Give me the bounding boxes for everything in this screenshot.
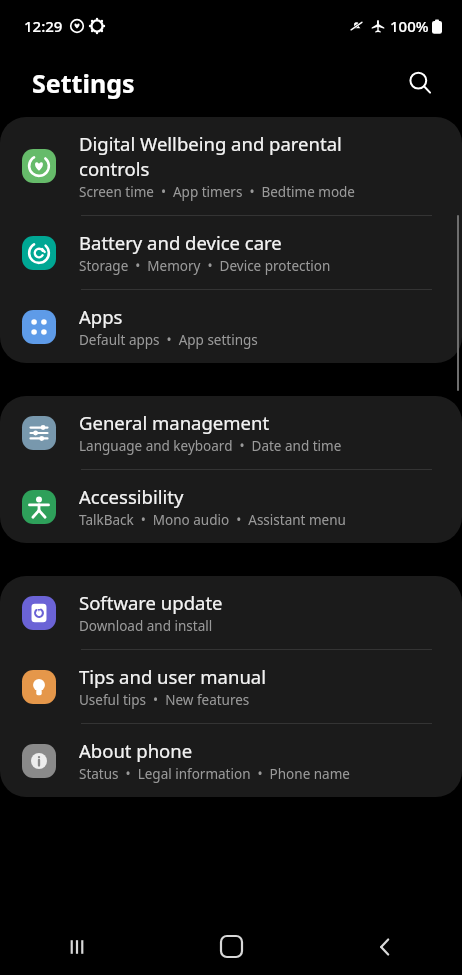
- staticText: Status • Legal information • Phone name: [79, 765, 350, 783]
- staticText: Screen time • App timers • Bedtime mode: [79, 183, 355, 201]
- button[interactable]: Recent apps: [0, 918, 154, 975]
- button[interactable]: Digital Wellbeing and parental controls: [0, 117, 462, 216]
- staticText: 12:29: [24, 16, 63, 36]
- staticText: Useful tips • New features: [79, 691, 250, 709]
- button[interactable]: Back: [308, 918, 462, 975]
- staticText: Digital Wellbeing and parental controls: [79, 131, 342, 181]
- staticText: About phone: [79, 738, 193, 763]
- button[interactable]: Software update: [0, 576, 462, 650]
- button[interactable]: Home: [154, 918, 308, 975]
- button[interactable]: General management: [0, 396, 462, 470]
- staticText: Settings: [32, 66, 135, 100]
- staticText: Storage • Memory • Device protection: [79, 257, 331, 275]
- button[interactable]: Apps: [0, 290, 462, 363]
- button[interactable]: Accessibility: [0, 470, 462, 543]
- staticText: Battery and device care: [79, 230, 282, 255]
- staticText: Software update: [79, 590, 223, 615]
- staticText: Default apps • App settings: [79, 331, 258, 349]
- staticText: TalkBack • Mono audio • Assistant menu: [79, 511, 346, 529]
- staticText: Tips and user manual: [79, 664, 266, 689]
- staticText: Language and keyboard • Date and time: [79, 437, 342, 455]
- staticText: Download and install: [79, 617, 213, 635]
- button[interactable]: Search: [400, 63, 440, 103]
- staticText: Accessibility: [79, 484, 184, 509]
- button[interactable]: Tips and user manual: [0, 650, 462, 724]
- staticText: Apps: [79, 304, 123, 329]
- button[interactable]: Battery and device care: [0, 216, 462, 290]
- staticText: 100%: [390, 16, 429, 36]
- staticText: General management: [79, 410, 270, 435]
- button[interactable]: About phone: [0, 724, 462, 797]
